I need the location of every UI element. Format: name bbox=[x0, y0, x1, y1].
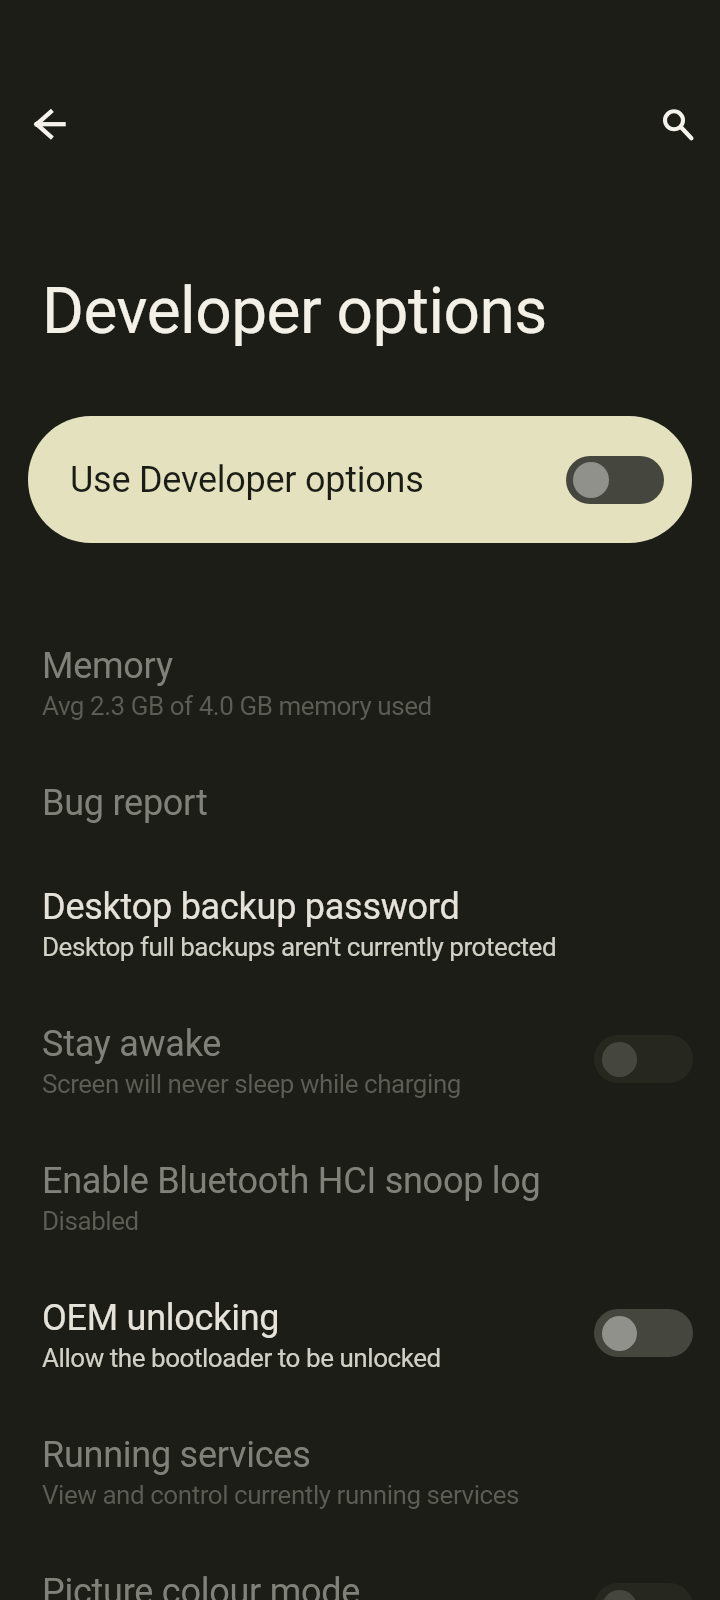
staticText: Bug report bbox=[42, 782, 208, 824]
staticText: Desktop full backups aren't currently pr… bbox=[42, 932, 557, 962]
staticText: Avg 2.3 GB of 4.0 GB memory used bbox=[42, 691, 432, 721]
staticText: Screen will never sleep while charging bbox=[42, 1069, 461, 1099]
staticText: Developer options bbox=[42, 274, 547, 349]
button[interactable]: Desktop backup password bbox=[0, 853, 720, 990]
staticText: Allow the bootloader to be unlocked bbox=[42, 1343, 441, 1373]
staticText: Use Developer options bbox=[70, 459, 566, 501]
button[interactable]: Bug report bbox=[0, 749, 720, 853]
staticText: OEM unlocking bbox=[42, 1297, 280, 1339]
button[interactable]: Picture colour mode bbox=[0, 1538, 720, 1600]
button[interactable]: Toggle setting bbox=[594, 1309, 693, 1357]
button[interactable]: OEM unlocking bbox=[0, 1264, 720, 1401]
staticText: Memory bbox=[42, 645, 173, 687]
staticText: Desktop backup password bbox=[42, 886, 460, 928]
staticText: View and control currently running servi… bbox=[42, 1480, 519, 1510]
button[interactable]: Toggle setting bbox=[594, 1583, 693, 1600]
button[interactable]: Navigate up bbox=[24, 100, 72, 148]
staticText: Picture colour mode bbox=[42, 1571, 361, 1600]
button[interactable]: Stay awake bbox=[0, 990, 720, 1127]
button[interactable]: Use Developer options bbox=[28, 416, 692, 543]
button[interactable]: Search bbox=[654, 96, 702, 144]
staticText: Running services bbox=[42, 1434, 311, 1476]
staticText: Disabled bbox=[42, 1206, 139, 1236]
button[interactable]: Toggle setting bbox=[594, 1035, 693, 1083]
staticText: Stay awake bbox=[42, 1023, 222, 1065]
button[interactable]: Memory bbox=[0, 612, 720, 749]
staticText: Enable Bluetooth HCI snoop log bbox=[42, 1160, 541, 1202]
button[interactable]: Enable Bluetooth HCI snoop log bbox=[0, 1127, 720, 1264]
button[interactable]: Running services bbox=[0, 1401, 720, 1538]
